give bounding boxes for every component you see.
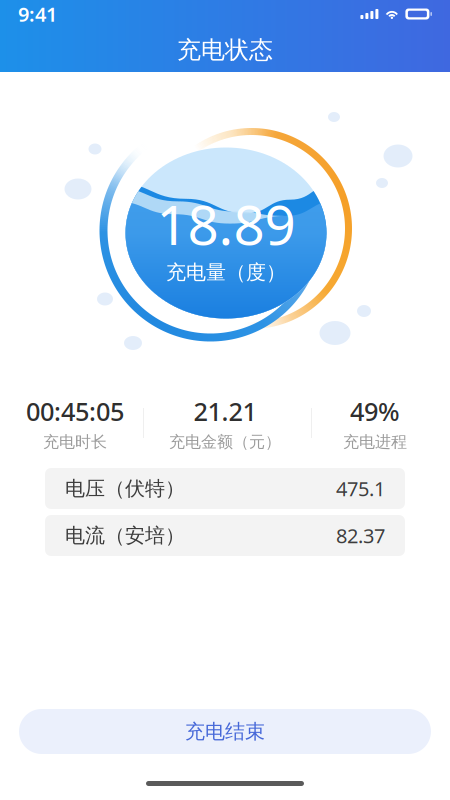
button[interactable]: 电流（安培） (45, 515, 405, 556)
staticText: 82.37 (336, 522, 385, 549)
staticText: 充电量（度） (166, 260, 286, 285)
staticText: 475.1 (336, 475, 385, 502)
staticText: 电压（伏特） (65, 476, 185, 501)
staticText: 充电时长 (43, 432, 107, 452)
staticText: 电流（安培） (65, 523, 185, 548)
staticText: 9:41 (18, 1, 57, 27)
staticText: 00:45:05 (26, 394, 124, 428)
staticText: 充电状态 (177, 35, 273, 65)
staticText: 49% (350, 394, 400, 428)
staticText: 充电进程 (343, 432, 407, 452)
staticText: 21.21 (193, 394, 256, 428)
button[interactable]: 充电结束 (19, 709, 431, 754)
staticText: 充电金额（元） (169, 432, 281, 452)
button[interactable]: 电压（伏特） (45, 468, 405, 509)
staticText: 18.89 (156, 187, 295, 260)
staticText: 充电结束 (185, 719, 265, 744)
